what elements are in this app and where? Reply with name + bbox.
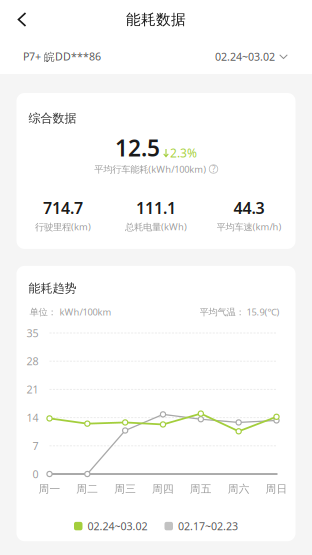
staticText: 平均行车能耗(kWh/100km) <box>94 163 206 175</box>
staticText: 12.5 <box>115 133 160 163</box>
staticText: ? <box>212 164 215 174</box>
staticText: 02.24~03.02 <box>87 519 147 533</box>
staticText: 周四 <box>152 482 174 496</box>
staticText: 2.3% <box>170 145 197 161</box>
staticText: 综合数据 <box>28 111 76 126</box>
staticText: 总耗电量(kWh) <box>125 220 187 233</box>
staticText: 0 <box>32 467 38 481</box>
staticText: 02.17~02.23 <box>178 519 238 533</box>
button[interactable]: 02.24~03.02 <box>215 49 288 64</box>
button[interactable]: Back <box>0 1 40 38</box>
staticText: 周六 <box>228 482 250 496</box>
staticText: 周一 <box>38 482 60 496</box>
staticText: 行驶里程(km) <box>35 220 91 233</box>
staticText: 111.1 <box>136 197 176 218</box>
staticText: 平均气温： 15.9(℃) <box>199 306 279 318</box>
staticText: 14 <box>26 410 38 425</box>
staticText: P7+ 皖DD***86 <box>23 49 101 64</box>
staticText: 21 <box>26 382 38 396</box>
staticText: 周二 <box>76 482 98 496</box>
staticText: 44.3 <box>233 197 264 218</box>
staticText: 28 <box>26 354 38 368</box>
staticText: 7 <box>32 439 38 453</box>
staticText: 周三 <box>114 482 136 496</box>
staticText: 周五 <box>190 482 212 496</box>
staticText: 35 <box>26 326 38 340</box>
staticText: 02.24~03.02 <box>215 49 275 64</box>
staticText: 714.7 <box>43 197 83 218</box>
staticText: 能耗数据 <box>126 10 186 28</box>
staticText: 周日 <box>265 482 287 496</box>
staticText: 能耗趋势 <box>28 281 76 296</box>
staticText: 单位： kWh/100km <box>29 306 111 318</box>
staticText: 平均车速(km/h) <box>216 220 281 233</box>
